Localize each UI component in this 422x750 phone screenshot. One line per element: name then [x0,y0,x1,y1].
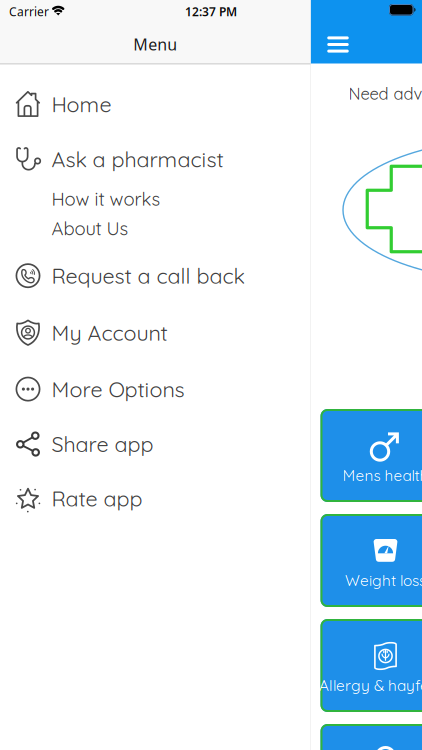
button[interactable]: Pain relief [320,724,422,750]
staticText: About Us [51,217,128,240]
staticText: Allergy & hayfever [319,676,422,695]
button[interactable]: Ask a pharmacist [0,136,310,182]
button[interactable]: Rate app [0,475,310,521]
staticText: Weight loss [345,571,422,590]
button[interactable]: Allergy & hayfever [320,619,422,712]
button[interactable]: Home [0,81,310,127]
staticText: Need advice on a common ailment? [348,83,422,104]
button[interactable]: Request a call back [0,253,310,299]
staticText: Menu [133,34,177,55]
staticText: Rate app [51,485,142,512]
button[interactable]: Mens health [320,409,422,502]
staticText: How it works [51,187,160,210]
staticText: Share app [51,431,153,457]
staticText: Mens health [342,466,422,485]
button[interactable]: Menu [316,24,360,64]
button[interactable]: Share app [0,421,310,467]
button[interactable]: More Options [0,366,310,412]
staticText: Request a call back [51,262,244,289]
staticText: Carrier [9,3,49,19]
button[interactable]: My Account [0,310,310,356]
staticText: 12:37 PM [185,3,237,19]
button[interactable]: About Us [0,212,310,244]
button[interactable]: How it works [0,183,310,215]
staticText: Home [51,91,111,118]
staticText: My Account [51,319,167,346]
staticText: More Options [51,376,184,402]
staticText: Ask a pharmacist [51,146,223,173]
button[interactable]: Weight loss [320,514,422,607]
